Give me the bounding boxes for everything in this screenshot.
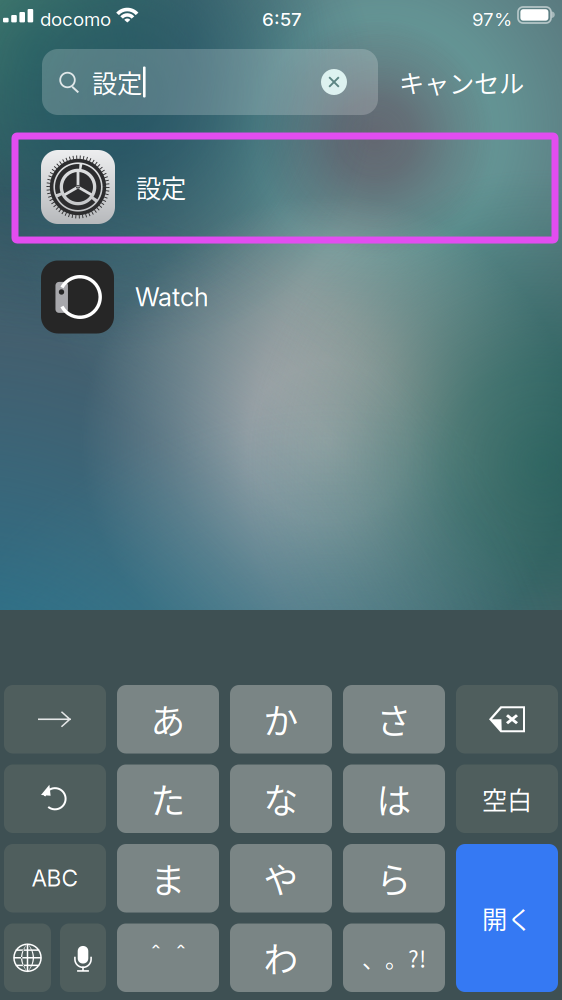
button[interactable] — [4, 764, 106, 833]
button[interactable]: ＾＾ — [117, 923, 219, 992]
button[interactable]: 開く — [456, 844, 558, 992]
staticText: ABC — [31, 864, 78, 892]
button[interactable] — [4, 685, 106, 753]
staticText: あ — [150, 694, 185, 744]
staticText: た — [150, 774, 185, 824]
button[interactable] — [60, 923, 106, 992]
staticText: は — [376, 774, 411, 824]
button[interactable]: わ — [230, 923, 332, 992]
button[interactable]: ら — [343, 844, 445, 912]
staticText: キャンセル — [399, 64, 524, 100]
button[interactable]: た — [117, 764, 219, 833]
button[interactable]: や — [230, 844, 332, 912]
button[interactable]: Watch — [0, 242, 562, 352]
button[interactable]: 、。?! — [343, 923, 445, 992]
staticText: ＾＾ — [143, 939, 193, 976]
button[interactable]: ABC — [4, 844, 106, 912]
staticText: ら — [376, 853, 411, 903]
staticText: や — [263, 853, 298, 903]
staticText: Watch — [135, 282, 209, 312]
staticText: 空白 — [482, 780, 532, 817]
staticText: 設定 — [136, 169, 186, 205]
staticText: docomo — [40, 8, 111, 31]
staticText: 6:57 — [262, 8, 302, 31]
staticText: 97% — [472, 8, 512, 31]
button[interactable]: あ — [117, 685, 219, 753]
button[interactable]: 設定 — [0, 132, 562, 242]
button[interactable]: Clear text — [314, 57, 354, 107]
button[interactable]: ま — [117, 844, 219, 912]
staticText: 設定 — [92, 64, 142, 100]
button[interactable]: は — [343, 764, 445, 833]
button[interactable] — [456, 685, 558, 753]
button[interactable]: さ — [343, 685, 445, 753]
staticText: ま — [150, 853, 185, 903]
staticText: 開く — [482, 900, 532, 936]
staticText: わ — [263, 933, 298, 983]
staticText: 、。?! — [362, 941, 426, 974]
button[interactable]: か — [230, 685, 332, 753]
button[interactable]: キャンセル — [379, 54, 544, 110]
button[interactable]: 空白 — [456, 764, 558, 833]
staticText: さ — [376, 694, 411, 744]
staticText: か — [263, 694, 298, 744]
button[interactable]: な — [230, 764, 332, 833]
staticText: な — [263, 774, 298, 824]
button[interactable] — [4, 923, 51, 992]
